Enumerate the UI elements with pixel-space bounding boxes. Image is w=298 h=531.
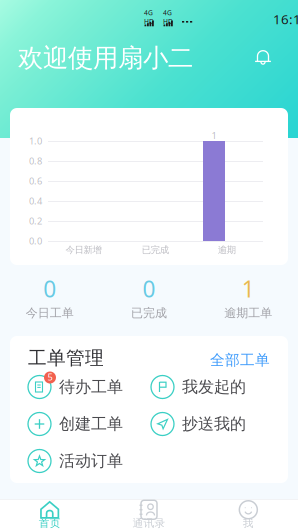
staticText: 今日新增 (65, 244, 101, 256)
staticText: 待办工单 (59, 377, 123, 397)
staticText: 1 (242, 274, 255, 304)
staticText: 0.4 (29, 195, 42, 207)
staticText: 0.8 (29, 155, 42, 167)
staticText: 工单管理 (28, 346, 104, 369)
staticText: 已完成 (131, 306, 167, 320)
button[interactable]: 5 (28, 370, 146, 404)
staticText: 我发起的 (182, 377, 246, 397)
staticText: 全部工单 (210, 351, 270, 369)
staticText: 已完成 (142, 244, 169, 256)
staticText: 4G HD (163, 8, 173, 26)
staticText: 逾期工单 (224, 306, 272, 320)
staticText: 逾期 (218, 244, 236, 256)
staticText: 1.0 (29, 135, 42, 147)
staticText: 创建工单 (59, 414, 123, 434)
staticText: 活动订单 (59, 451, 123, 471)
button[interactable]: 我发起的 (151, 370, 269, 404)
staticText: 今日工单 (26, 306, 74, 320)
staticText: 0 (142, 274, 155, 304)
button[interactable]: 1 (199, 272, 298, 322)
button[interactable]: 0 (0, 272, 99, 322)
staticText: 1 (211, 129, 216, 142)
staticText: 5 (47, 371, 52, 383)
staticText: 首页 (39, 517, 61, 530)
staticText: 通讯录 (132, 517, 165, 530)
button[interactable]: 通知 (246, 41, 280, 75)
button[interactable]: 全部工单 (208, 350, 270, 370)
button[interactable]: 活动订单 (28, 444, 146, 478)
staticText: 我 (243, 517, 254, 530)
button[interactable]: 抄送我的 (151, 407, 269, 441)
staticText: 16:10 (273, 10, 298, 28)
staticText: 0 (43, 274, 56, 304)
staticText: 0.2 (29, 215, 42, 227)
button[interactable]: 0 (99, 272, 199, 322)
staticText: 抄送我的 (182, 414, 246, 434)
button[interactable]: 我 (199, 499, 298, 531)
staticText: 4G HD (144, 8, 154, 26)
button[interactable]: 通讯录 (99, 499, 199, 531)
staticText: 0.0 (29, 235, 42, 247)
staticText: 欢迎使用扇小二 (18, 42, 193, 73)
button[interactable]: 首页 (0, 499, 99, 531)
button[interactable]: 创建工单 (28, 407, 146, 441)
staticText: 0.6 (29, 175, 42, 187)
